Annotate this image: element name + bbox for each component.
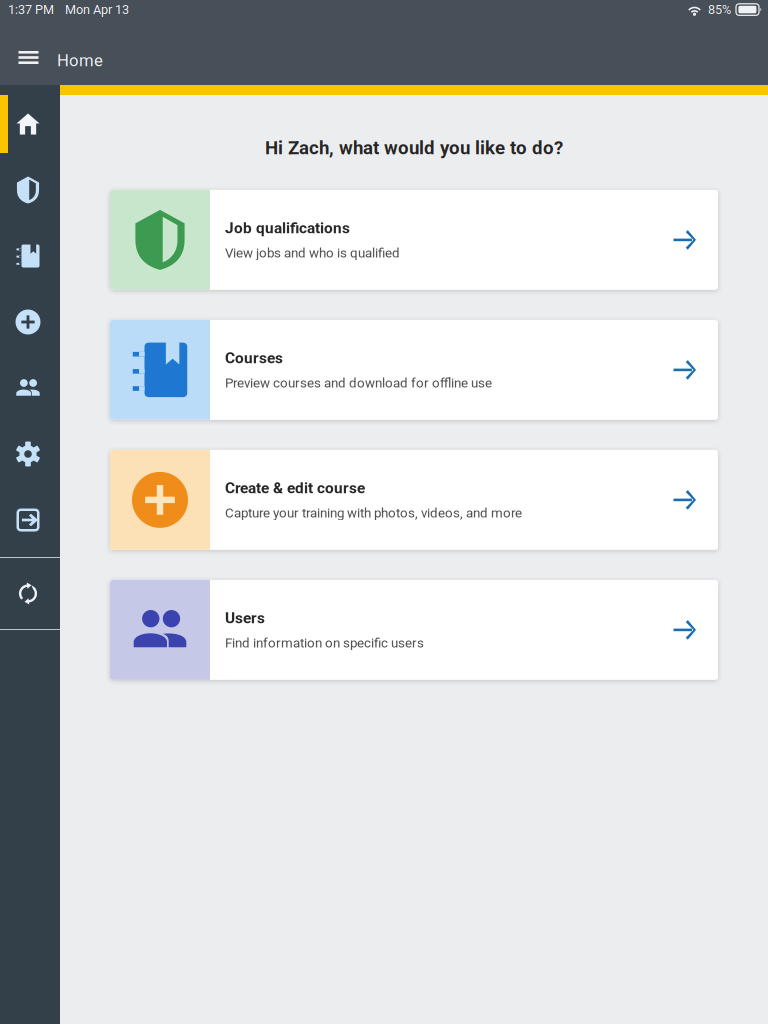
staticText: View jobs and who is qualified xyxy=(225,245,400,261)
button[interactable]: Log out xyxy=(0,487,60,553)
button[interactable]: Job qualifications xyxy=(110,190,718,290)
staticText: Job qualifications xyxy=(225,219,350,237)
button[interactable]: Create & edit course xyxy=(110,450,718,550)
button[interactable]: Menu xyxy=(0,28,57,92)
staticText: Capture your training with photos, video… xyxy=(225,505,522,521)
staticText: 85% xyxy=(708,2,731,17)
staticText: Create & edit course xyxy=(225,479,365,497)
button[interactable]: Users xyxy=(0,355,60,421)
button[interactable]: Courses xyxy=(110,320,718,420)
button[interactable]: Courses xyxy=(0,223,60,289)
staticText: Courses xyxy=(225,349,283,367)
staticText: Mon Apr 13 xyxy=(65,2,129,17)
staticText: 1:37 PM xyxy=(8,2,54,17)
staticText: Users xyxy=(225,609,265,627)
staticText: Home xyxy=(57,51,103,70)
staticText: Hi Zach, what would you like to do? xyxy=(265,137,563,159)
staticText: Preview courses and download for offline… xyxy=(225,375,492,391)
staticText: Find information on specific users xyxy=(225,635,424,651)
button[interactable]: Home xyxy=(0,91,60,157)
button[interactable]: Settings xyxy=(0,421,60,487)
button[interactable]: Job qualifications xyxy=(0,157,60,223)
button[interactable]: Create course xyxy=(0,289,60,355)
button[interactable]: Users xyxy=(110,580,718,680)
button[interactable]: Sync xyxy=(0,558,60,629)
